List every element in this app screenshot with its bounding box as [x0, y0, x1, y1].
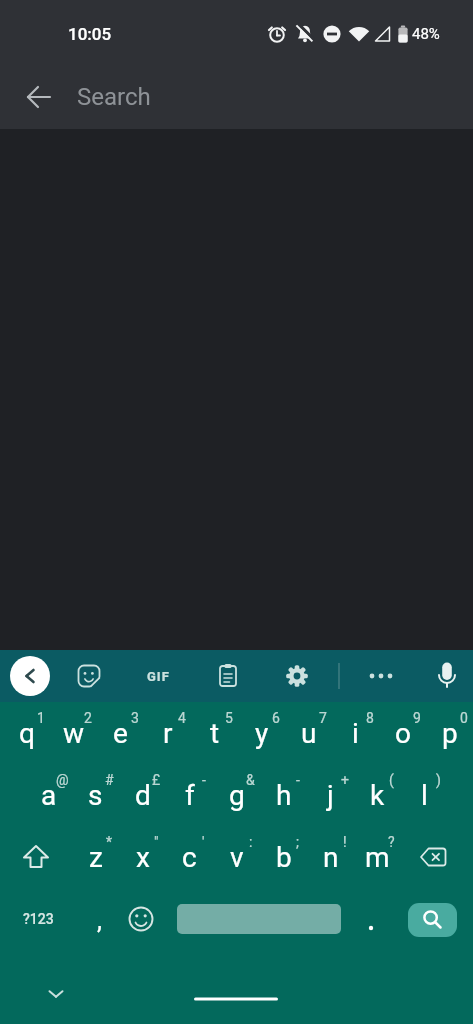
staticText: ? [388, 834, 395, 850]
staticText: ) [436, 772, 441, 788]
button[interactable]: y [238, 702, 285, 764]
staticText: x [136, 841, 150, 874]
button[interactable] [206, 654, 250, 698]
staticText: 0 [460, 710, 468, 726]
button[interactable]: b [260, 826, 307, 888]
staticText: g [229, 779, 245, 812]
staticText: 7 [319, 710, 327, 726]
button[interactable]: n [307, 826, 354, 888]
button[interactable]: g [213, 764, 260, 826]
button[interactable]: z [72, 826, 119, 888]
button[interactable]: ?123 [6, 888, 70, 950]
button[interactable]: r [144, 702, 191, 764]
button[interactable]: a [25, 764, 72, 826]
button[interactable]: q [3, 702, 50, 764]
staticText: 4 [178, 710, 186, 726]
staticText: " [154, 834, 159, 850]
staticText: c [182, 841, 197, 874]
button[interactable]: i [332, 702, 379, 764]
button[interactable] [8, 654, 52, 698]
staticText: m [365, 841, 390, 874]
staticText: t [210, 717, 220, 750]
button[interactable]: k [354, 764, 401, 826]
staticText: b [276, 841, 292, 874]
staticText: 3 [131, 710, 139, 726]
staticText: e [113, 717, 128, 750]
staticText: 5 [225, 710, 233, 726]
staticText: 9 [413, 710, 421, 726]
button[interactable] [119, 888, 163, 950]
button[interactable]: f [166, 764, 213, 826]
button[interactable] [404, 826, 464, 888]
staticText: GIF [147, 669, 170, 684]
staticText: * [106, 834, 113, 850]
staticText: u [301, 717, 317, 750]
button[interactable]: j [307, 764, 354, 826]
staticText: ' [202, 834, 205, 850]
staticText: s [88, 779, 103, 812]
button[interactable]: , [79, 893, 119, 947]
staticText: i [352, 717, 359, 750]
button[interactable]: o [379, 702, 426, 764]
button[interactable] [275, 654, 319, 698]
button[interactable] [34, 979, 78, 1009]
button[interactable] [177, 904, 341, 934]
staticText: j [327, 779, 334, 812]
button[interactable] [6, 826, 66, 888]
button[interactable]: p [426, 702, 473, 764]
button[interactable] [365, 902, 377, 936]
button[interactable]: e [97, 702, 144, 764]
button[interactable]: m [354, 826, 401, 888]
staticText: £ [152, 772, 161, 788]
button[interactable] [16, 74, 62, 120]
button[interactable]: w [50, 702, 97, 764]
staticText: k [370, 779, 385, 812]
button[interactable] [359, 654, 403, 698]
button[interactable]: s [72, 764, 119, 826]
button[interactable]: d [119, 764, 166, 826]
staticText: # [105, 772, 114, 788]
staticText: & [246, 772, 255, 788]
staticText: 8 [366, 710, 374, 726]
button[interactable]: c [166, 826, 213, 888]
staticText: y [255, 717, 269, 750]
button[interactable]: GIF [136, 654, 180, 698]
staticText: 2 [84, 710, 92, 726]
button[interactable]: l [401, 764, 448, 826]
staticText: o [395, 717, 411, 750]
staticText: z [89, 841, 103, 874]
staticText: 48% [412, 25, 440, 43]
staticText: ?123 [23, 911, 54, 927]
button[interactable]: t [191, 702, 238, 764]
staticText: ; [296, 834, 299, 850]
staticText: + [341, 772, 349, 788]
button[interactable]: x [119, 826, 166, 888]
staticText: v [230, 841, 244, 874]
staticText: a [41, 779, 57, 812]
staticText: l [421, 779, 428, 812]
staticText: 10:05 [68, 24, 112, 44]
button[interactable] [408, 903, 457, 937]
staticText: ! [343, 834, 347, 850]
staticText: - [202, 772, 206, 788]
staticText: @ [56, 772, 69, 788]
button[interactable]: h [260, 764, 307, 826]
staticText: - [296, 772, 300, 788]
staticText: w [63, 717, 85, 750]
staticText: 1 [37, 710, 45, 726]
staticText: p [442, 717, 458, 750]
staticText: 6 [272, 710, 280, 726]
button[interactable]: v [213, 826, 260, 888]
staticText: d [135, 779, 151, 812]
button[interactable]: u [285, 702, 332, 764]
staticText: Search [77, 83, 151, 111]
staticText: f [185, 779, 195, 812]
staticText: h [276, 779, 292, 812]
staticText: , [97, 906, 102, 935]
staticText: : [249, 834, 253, 850]
button[interactable] [425, 654, 469, 698]
staticText: ( [389, 772, 394, 788]
staticText: r [163, 717, 173, 750]
button[interactable] [67, 654, 111, 698]
staticText: n [323, 841, 339, 874]
